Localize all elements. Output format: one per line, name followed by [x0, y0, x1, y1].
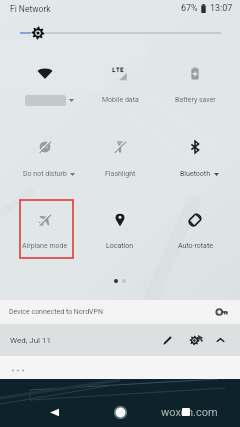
- button[interactable]: Battery saver: [158, 49, 232, 104]
- button[interactable]: Location: [83, 195, 157, 250]
- button[interactable]: Mobile data: [83, 49, 157, 104]
- staticText: Location: [106, 242, 134, 250]
- staticText: Auto-rotate: [178, 242, 213, 250]
- button[interactable]: Flashlight: [83, 122, 157, 177]
- button[interactable]: Do not disturb: [8, 122, 82, 177]
- button[interactable]: Device connected to NordVPN: [0, 300, 240, 324]
- button[interactable]: Wi-Fi: [8, 49, 82, 104]
- button[interactable]: Recents: [173, 399, 199, 425]
- button[interactable]: Back: [41, 399, 67, 425]
- button[interactable]: Home: [107, 399, 133, 425]
- staticText: Flashlight: [105, 170, 136, 178]
- button[interactable]: Collapse: [211, 331, 229, 349]
- staticText: 13:07: [210, 3, 233, 14]
- staticText: 67%: [181, 3, 198, 14]
- button[interactable]: Auto-rotate: [158, 195, 232, 250]
- button[interactable]: Bluetooth: [158, 122, 232, 177]
- staticText: Bluetooth: [180, 170, 210, 178]
- staticText: Mobile data: [102, 96, 139, 104]
- button[interactable]: Airplane mode: [8, 195, 82, 250]
- staticText: Battery saver: [175, 96, 216, 104]
- button[interactable]: Edit: [158, 331, 176, 349]
- button[interactable]: Settings: [185, 331, 203, 349]
- staticText: Device connected to NordVPN: [9, 308, 103, 316]
- staticText: Wed, Jul 11: [10, 336, 52, 345]
- staticText: Fi Network: [10, 4, 51, 14]
- other: VPN: [216, 306, 228, 318]
- staticText: woxdn.com: [161, 406, 218, 419]
- staticText: Do not disturb: [23, 170, 67, 178]
- staticText: Airplane mode: [22, 242, 68, 250]
